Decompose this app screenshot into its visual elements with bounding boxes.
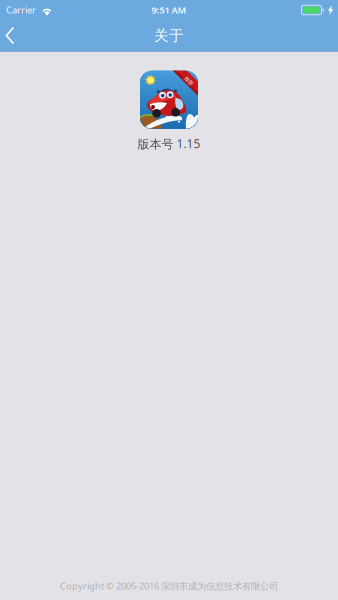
staticText: 9:51 AM	[151, 4, 186, 16]
button[interactable]: Back	[0, 20, 28, 50]
staticText: 推荐	[183, 78, 193, 84]
staticText: 版本号 1.15	[137, 136, 200, 152]
staticText: Carrier	[6, 4, 36, 16]
staticText: Copyright © 2005-2016 深圳市成为信息技术有限公司	[60, 580, 278, 592]
staticText: 关于	[154, 26, 184, 44]
